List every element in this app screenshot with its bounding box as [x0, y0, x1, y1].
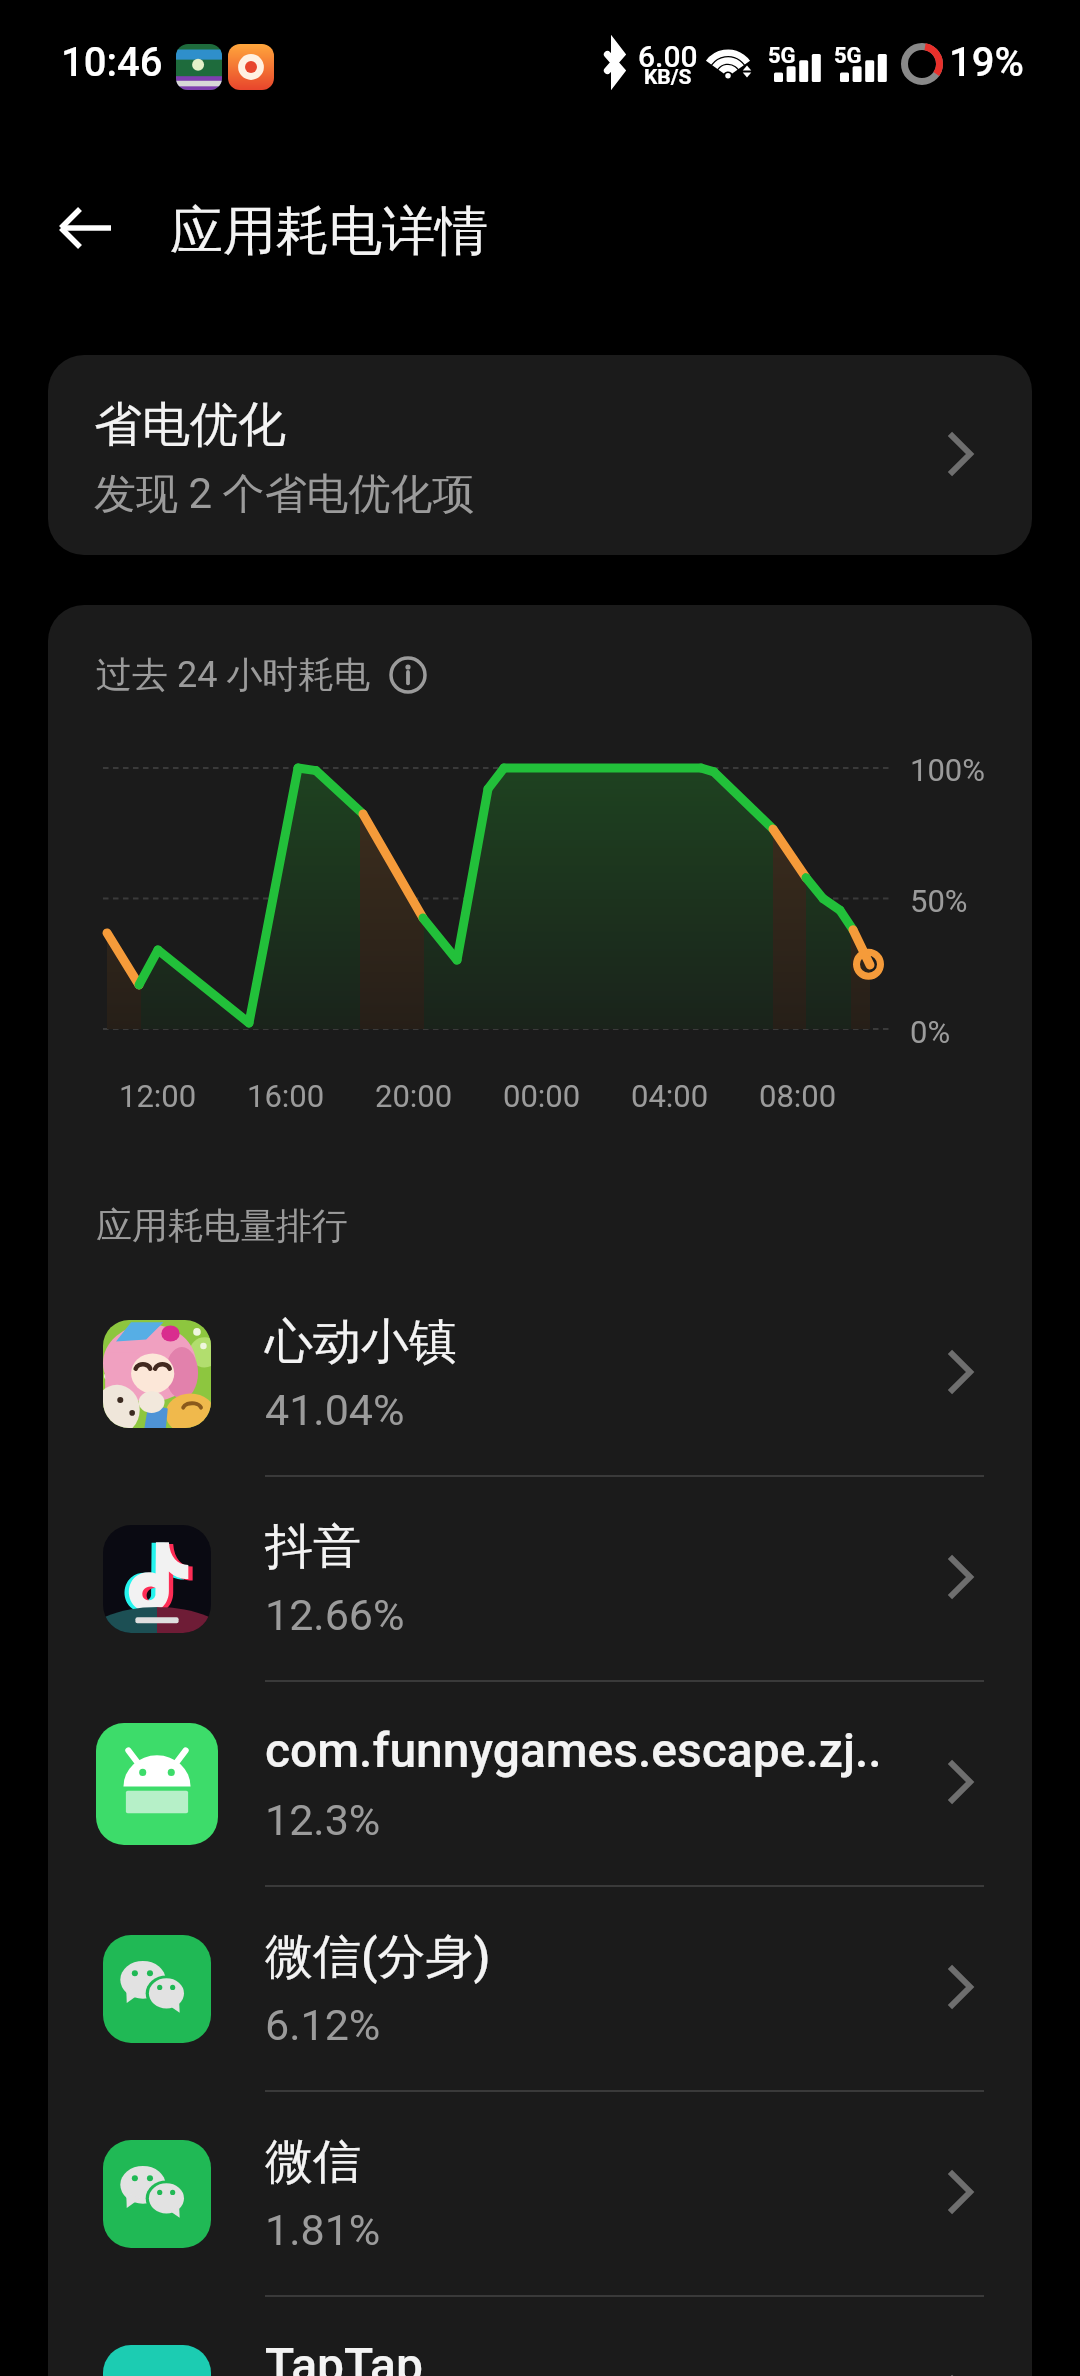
staticText: 50% — [910, 883, 968, 919]
staticText: 12.66% — [265, 1590, 405, 1640]
button[interactable]: 微信(分身) — [48, 1887, 1032, 2090]
staticText: 41.04% — [265, 1385, 405, 1435]
staticText: 过去 24 小时耗电 — [96, 652, 371, 697]
staticText: 12:00 — [119, 1078, 197, 1114]
staticText: 0% — [910, 1014, 951, 1050]
staticText: 04:00 — [631, 1078, 709, 1114]
staticText: 5G — [768, 43, 796, 69]
staticText: 6.00 — [638, 39, 698, 74]
button[interactable]: More information — [389, 656, 427, 694]
staticText: 微信(分身) — [265, 1927, 935, 1987]
staticText: 19% — [949, 39, 1024, 86]
button[interactable]: Back — [29, 172, 141, 284]
staticText: 08:00 — [759, 1078, 837, 1114]
staticText: 应用耗电量排行 — [96, 1203, 348, 1248]
staticText: com.funnygames.escape.zj.. — [265, 1722, 935, 1778]
staticText: 1.81% — [265, 2205, 381, 2255]
button[interactable]: 微信 — [48, 2092, 1032, 2295]
button[interactable]: TapTap — [48, 2297, 1032, 2376]
staticText: 6.12% — [265, 2000, 381, 2050]
staticText: 心动小镇 — [265, 1312, 935, 1372]
staticText: 发现 2 个省电优化项 — [94, 468, 475, 521]
button[interactable]: 心动小镇 — [48, 1272, 1032, 1475]
staticText: 12.3% — [265, 1795, 381, 1845]
button[interactable]: com.funnygames.escape.zj.. — [48, 1682, 1032, 1885]
staticText: 微信 — [265, 2132, 935, 2192]
staticText: 省电优化 — [94, 395, 286, 455]
staticText: 00:00 — [503, 1078, 581, 1114]
staticText: KB/S — [644, 65, 692, 90]
staticText: TapTap — [265, 2337, 935, 2376]
staticText: 16:00 — [247, 1078, 325, 1114]
staticText: 100% — [910, 752, 985, 788]
staticText: 抖音 — [265, 1517, 935, 1577]
staticText: 应用耗电详情 — [170, 198, 488, 265]
button[interactable]: 省电优化 — [48, 355, 1032, 555]
button[interactable]: 抖音 — [48, 1477, 1032, 1680]
staticText: 10:46 — [61, 39, 163, 86]
staticText: 5G — [834, 43, 862, 69]
staticText: 20:00 — [375, 1078, 453, 1114]
